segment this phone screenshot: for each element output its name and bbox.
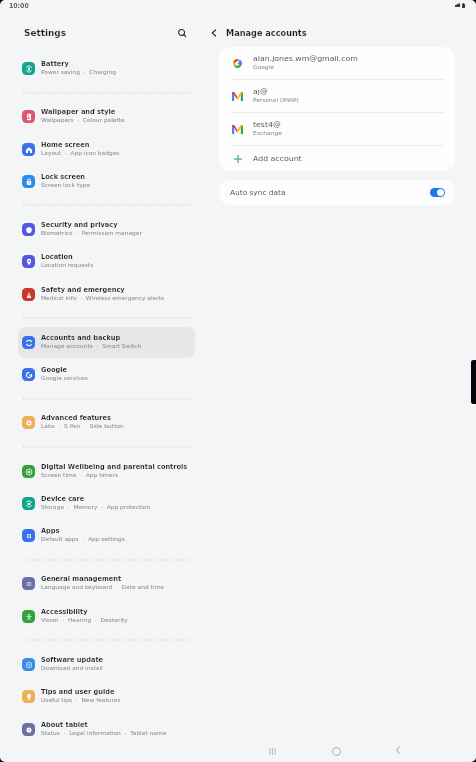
button[interactable]: Wallpaper and style bbox=[18, 101, 195, 132]
button[interactable]: Edge panel bbox=[471, 360, 476, 404]
button[interactable]: Search bbox=[174, 25, 190, 41]
staticText: General management bbox=[41, 575, 122, 583]
staticText: Battery bbox=[41, 60, 69, 68]
staticText: Personal (IMAP) bbox=[253, 97, 299, 104]
staticText: Screen lock type bbox=[41, 182, 91, 189]
staticText: Google services bbox=[41, 375, 88, 382]
button[interactable]: Home bbox=[320, 738, 352, 762]
button[interactable]: aj@ bbox=[219, 80, 455, 113]
button[interactable]: Battery bbox=[18, 53, 195, 84]
staticText: Auto sync data bbox=[230, 188, 286, 197]
staticText: Download and install bbox=[41, 665, 103, 672]
staticText: Tips and user guide bbox=[41, 688, 115, 696]
button[interactable]: Device care bbox=[18, 488, 195, 519]
staticText: Wallpapers · Colour palette bbox=[41, 117, 125, 124]
button[interactable]: alan.jones.wm@gmail.com bbox=[219, 47, 455, 80]
staticText: Medical info · Wireless emergency alerts bbox=[41, 295, 165, 302]
staticText: Software update bbox=[41, 656, 104, 664]
staticText: Location bbox=[41, 253, 73, 261]
staticText: Default apps · App settings bbox=[41, 536, 125, 543]
staticText: Language and keyboard · Date and time bbox=[41, 584, 164, 591]
button[interactable]: Google bbox=[18, 359, 195, 390]
button[interactable]: Location bbox=[18, 246, 195, 277]
staticText: test4@ bbox=[253, 120, 281, 129]
staticText: aj@ bbox=[253, 87, 268, 96]
button[interactable]: Auto sync data bbox=[219, 180, 455, 205]
staticText: Apps bbox=[41, 527, 60, 535]
staticText: Device care bbox=[41, 495, 85, 503]
staticText: Google bbox=[253, 64, 274, 71]
button[interactable]: Back bbox=[206, 25, 222, 41]
button[interactable]: General management bbox=[18, 568, 195, 599]
staticText: Useful tips · New features bbox=[41, 697, 121, 704]
staticText: Wallpaper and style bbox=[41, 108, 116, 116]
button[interactable]: test4@ bbox=[219, 113, 455, 146]
staticText: Settings bbox=[24, 28, 66, 38]
staticText: 10:00 bbox=[9, 2, 29, 9]
button[interactable]: Lock screen bbox=[18, 166, 195, 197]
staticText: Security and privacy bbox=[41, 221, 118, 229]
staticText: Google bbox=[41, 366, 67, 374]
staticText: Safety and emergency bbox=[41, 286, 125, 294]
staticText: Advanced features bbox=[41, 414, 111, 422]
staticText: Lock screen bbox=[41, 173, 86, 181]
button[interactable]: Software update bbox=[18, 649, 195, 680]
staticText: Vision · Hearing · Dexterity bbox=[41, 617, 128, 624]
staticText: Add account bbox=[253, 154, 302, 163]
staticText: Manage accounts bbox=[226, 28, 307, 38]
button[interactable]: Security and privacy bbox=[18, 214, 195, 245]
staticText: Exchange bbox=[253, 130, 282, 137]
staticText: Storage · Memory · App protection bbox=[41, 504, 151, 511]
button[interactable]: Accounts and backup bbox=[18, 327, 195, 358]
button[interactable]: Recents bbox=[256, 738, 288, 762]
button[interactable]: Home screen bbox=[18, 134, 195, 165]
staticText: Labs · S Pen · Side button bbox=[41, 423, 124, 430]
button[interactable]: Safety and emergency bbox=[18, 279, 195, 310]
staticText: Accessibility bbox=[41, 608, 88, 616]
button[interactable]: Apps bbox=[18, 520, 195, 551]
button[interactable]: Accessibility bbox=[18, 601, 195, 632]
staticText: Biometrics · Permission manager bbox=[41, 230, 142, 237]
button[interactable]: About tablet bbox=[18, 714, 195, 745]
button[interactable]: Digital Wellbeing and parental controls bbox=[18, 456, 195, 487]
staticText: Home screen bbox=[41, 141, 90, 149]
staticText: Accounts and backup bbox=[41, 334, 121, 342]
staticText: Manage accounts · Smart Switch bbox=[41, 343, 142, 350]
button[interactable]: Add account bbox=[219, 146, 455, 171]
staticText: Power saving · Charging bbox=[41, 69, 116, 76]
staticText: Location requests bbox=[41, 262, 94, 269]
staticText: Layout · App icon badges bbox=[41, 150, 120, 157]
staticText: Screen time · App timers bbox=[41, 472, 118, 479]
button[interactable]: Back bbox=[382, 737, 414, 762]
staticText: Digital Wellbeing and parental controls bbox=[41, 463, 188, 471]
staticText: Status · Legal information · Tablet name bbox=[41, 730, 167, 737]
button[interactable]: Tips and user guide bbox=[18, 681, 195, 712]
staticText: alan.jones.wm@gmail.com bbox=[253, 54, 358, 63]
staticText: About tablet bbox=[41, 721, 88, 729]
button[interactable]: Advanced features bbox=[18, 407, 195, 438]
